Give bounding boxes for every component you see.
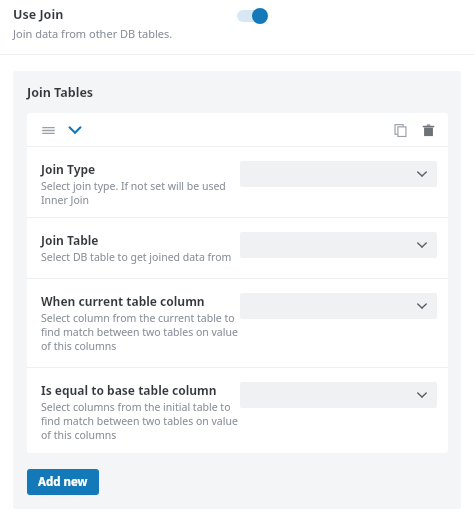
button[interactable]: Reorder: [38, 120, 58, 140]
button[interactable]: When current table column dropdown: [240, 293, 437, 319]
staticText: Use Join: [13, 6, 64, 23]
staticText: Select DB table to get joined data from: [41, 250, 232, 264]
button[interactable]: Join Type dropdown: [240, 161, 437, 187]
staticText: Is equal to base table column: [41, 382, 217, 398]
button[interactable]: Use Join toggle: [236, 5, 274, 27]
staticText: Join Table: [41, 232, 99, 248]
staticText: Select columns from the initial table to…: [41, 400, 241, 442]
staticText: Add new: [38, 474, 88, 490]
staticText: Join data from other DB tables.: [13, 26, 173, 41]
staticText: When current table column: [41, 293, 205, 309]
button[interactable]: Duplicate: [390, 120, 410, 140]
staticText: Join Type: [41, 161, 96, 177]
button[interactable]: Is equal to base table column dropdown: [240, 382, 437, 408]
button[interactable]: Collapse: [65, 120, 85, 140]
staticText: Join Tables: [27, 84, 94, 101]
button[interactable]: Delete: [418, 120, 438, 140]
staticText: Select column from the current table to …: [41, 311, 241, 353]
button[interactable]: Join Table dropdown: [240, 232, 437, 258]
staticText: Select join type. If not set will be use…: [41, 179, 241, 207]
button[interactable]: Add new: [27, 469, 99, 495]
